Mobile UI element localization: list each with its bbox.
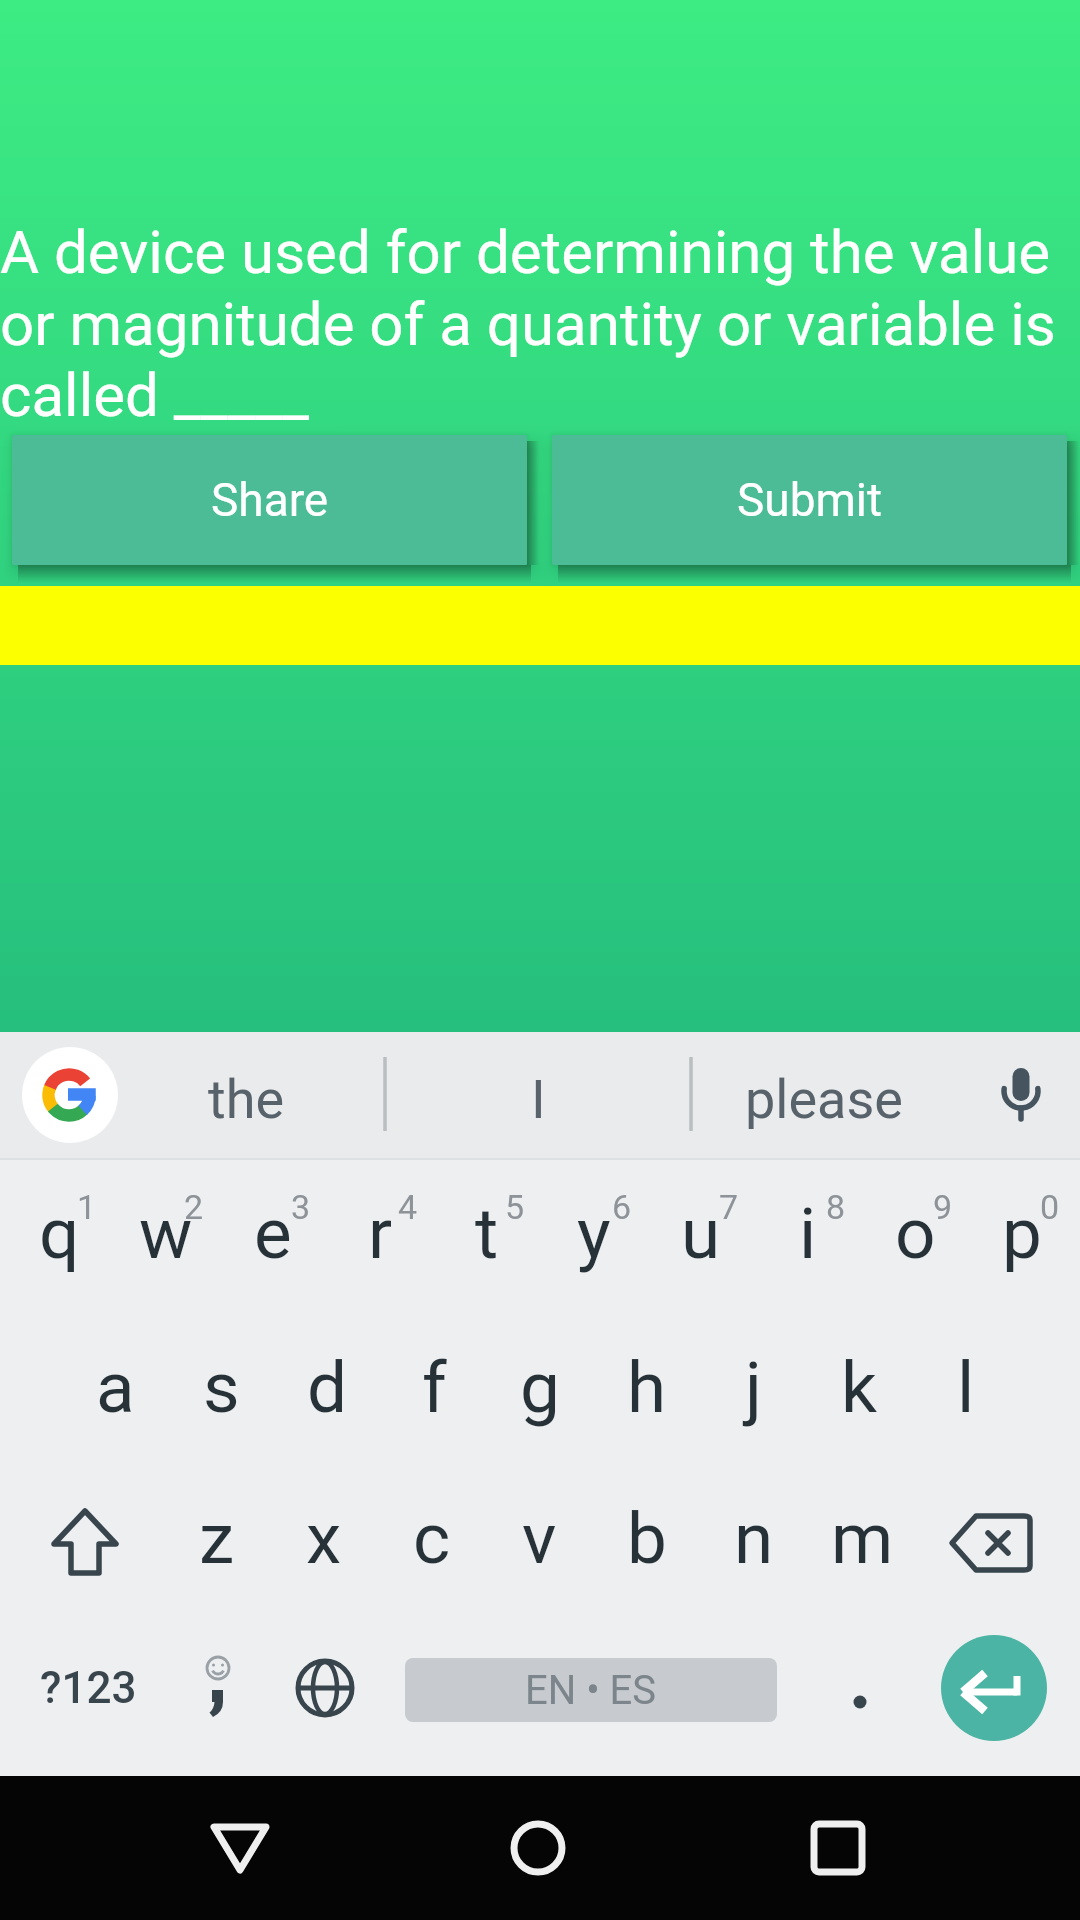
- button[interactable]: g: [486, 1322, 594, 1452]
- staticText: k: [841, 1346, 877, 1429]
- staticText: r: [368, 1192, 393, 1275]
- staticText: e: [254, 1192, 292, 1275]
- staticText: Share: [211, 473, 329, 527]
- button[interactable]: 2: [174, 1185, 214, 1229]
- staticText: f: [422, 1346, 447, 1429]
- button[interactable]: EN • ES: [405, 1658, 777, 1722]
- button[interactable]: q: [5, 1168, 113, 1298]
- button[interactable]: 8: [816, 1185, 856, 1229]
- staticText: 7: [719, 1187, 739, 1227]
- button[interactable]: Share: [12, 435, 527, 565]
- button[interactable]: a: [61, 1322, 169, 1452]
- button[interactable]: [778, 1788, 898, 1908]
- button[interactable]: n: [700, 1473, 808, 1603]
- button[interactable]: k: [805, 1322, 913, 1452]
- staticText: Submit: [737, 473, 883, 527]
- staticText: 5: [505, 1187, 525, 1227]
- button[interactable]: d: [273, 1322, 381, 1452]
- staticText: u: [681, 1192, 721, 1275]
- button[interactable]: t: [433, 1168, 541, 1298]
- staticText: I: [531, 1068, 546, 1131]
- staticText: o: [895, 1192, 936, 1275]
- button[interactable]: [180, 1788, 300, 1908]
- button[interactable]: l: [912, 1322, 1020, 1452]
- button[interactable]: Submit: [552, 435, 1067, 565]
- staticText: x: [306, 1497, 342, 1580]
- button[interactable]: [164, 1628, 272, 1748]
- button[interactable]: I: [413, 1049, 663, 1149]
- staticText: s: [203, 1346, 240, 1429]
- staticText: w: [139, 1192, 193, 1275]
- staticText: n: [734, 1497, 774, 1580]
- button[interactable]: 0: [1030, 1185, 1070, 1229]
- staticText: j: [745, 1346, 762, 1429]
- staticText: v: [522, 1497, 557, 1580]
- staticText: 0: [1040, 1187, 1060, 1227]
- button[interactable]: 6: [602, 1185, 642, 1229]
- staticText: p: [1002, 1192, 1042, 1275]
- button[interactable]: r: [326, 1168, 434, 1298]
- staticText: 4: [398, 1187, 418, 1227]
- button[interactable]: f: [380, 1322, 488, 1452]
- staticText: i: [799, 1192, 817, 1275]
- staticText: c: [413, 1497, 451, 1580]
- staticText: d: [307, 1346, 348, 1429]
- button[interactable]: p: [968, 1168, 1076, 1298]
- button[interactable]: [932, 1482, 1054, 1604]
- staticText: 8: [826, 1187, 846, 1227]
- button[interactable]: [810, 1648, 910, 1738]
- button[interactable]: 1: [67, 1185, 107, 1229]
- staticText: b: [627, 1497, 667, 1580]
- button[interactable]: z: [163, 1473, 271, 1603]
- staticText: l: [957, 1346, 975, 1429]
- staticText: the: [208, 1068, 285, 1131]
- staticText: A device used for determining the value …: [0, 217, 1080, 430]
- staticText: q: [39, 1192, 80, 1275]
- staticText: 9: [933, 1187, 953, 1227]
- button[interactable]: m: [808, 1473, 916, 1603]
- staticText: please: [745, 1068, 903, 1131]
- staticText: 6: [612, 1187, 632, 1227]
- staticText: t: [475, 1192, 499, 1275]
- button[interactable]: 5: [495, 1185, 535, 1229]
- staticText: h: [627, 1346, 667, 1429]
- staticText: ?123: [40, 1662, 137, 1714]
- button[interactable]: 9: [923, 1185, 963, 1229]
- button[interactable]: [271, 1634, 379, 1742]
- staticText: a: [96, 1346, 135, 1429]
- button[interactable]: u: [647, 1168, 755, 1298]
- button[interactable]: please: [699, 1049, 949, 1149]
- button[interactable]: b: [593, 1473, 701, 1603]
- button[interactable]: the: [121, 1049, 371, 1149]
- staticText: y: [577, 1192, 611, 1275]
- button[interactable]: o: [861, 1168, 969, 1298]
- button[interactable]: w: [112, 1168, 220, 1298]
- staticText: EN • ES: [525, 1667, 657, 1714]
- button[interactable]: [981, 1055, 1061, 1135]
- button[interactable]: [24, 1482, 146, 1604]
- button[interactable]: [941, 1635, 1047, 1741]
- staticText: m: [831, 1497, 894, 1580]
- button[interactable]: [478, 1788, 598, 1908]
- button[interactable]: c: [378, 1473, 486, 1603]
- button[interactable]: v: [485, 1473, 593, 1603]
- staticText: g: [520, 1346, 560, 1429]
- button[interactable]: y: [540, 1168, 648, 1298]
- button[interactable]: e: [219, 1168, 327, 1298]
- button[interactable]: 7: [709, 1185, 749, 1229]
- button[interactable]: h: [593, 1322, 701, 1452]
- button[interactable]: x: [270, 1473, 378, 1603]
- staticText: 1: [77, 1187, 97, 1227]
- staticText: z: [199, 1497, 235, 1580]
- button[interactable]: ?123: [8, 1628, 168, 1748]
- button[interactable]: 4: [388, 1185, 428, 1229]
- button[interactable]: j: [699, 1322, 807, 1452]
- button[interactable]: i: [754, 1168, 862, 1298]
- staticText: 2: [184, 1187, 204, 1227]
- button[interactable]: s: [167, 1322, 275, 1452]
- staticText: 3: [291, 1187, 311, 1227]
- button[interactable]: [22, 1047, 118, 1143]
- button[interactable]: 3: [281, 1185, 321, 1229]
